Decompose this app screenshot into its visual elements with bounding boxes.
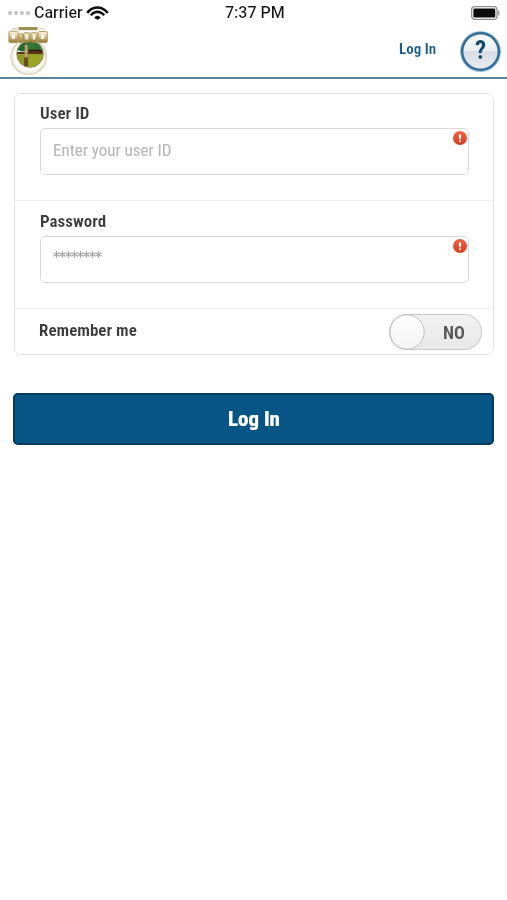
button[interactable]: Remember me xyxy=(14,309,494,355)
button[interactable]: Remember me toggle, off xyxy=(389,314,482,350)
staticText: Remember me xyxy=(39,320,137,340)
staticText: Log In xyxy=(399,40,437,58)
staticText: Password xyxy=(40,211,107,231)
staticText: NO xyxy=(443,322,465,343)
staticText: ? xyxy=(475,36,487,65)
button[interactable] xyxy=(40,236,469,283)
staticText: User ID xyxy=(40,103,90,123)
staticText: Log In xyxy=(228,407,280,432)
staticText: Carrier xyxy=(34,3,83,22)
staticText: 7:37 PM xyxy=(225,3,285,22)
button[interactable]: Enter your user ID xyxy=(40,128,469,175)
button[interactable]: Log In xyxy=(13,393,494,445)
staticText: Enter your user ID xyxy=(53,140,172,160)
button[interactable]: Log In xyxy=(391,30,445,64)
button[interactable]: City of Dixon home xyxy=(0,24,56,77)
button[interactable]: Help xyxy=(460,31,501,72)
